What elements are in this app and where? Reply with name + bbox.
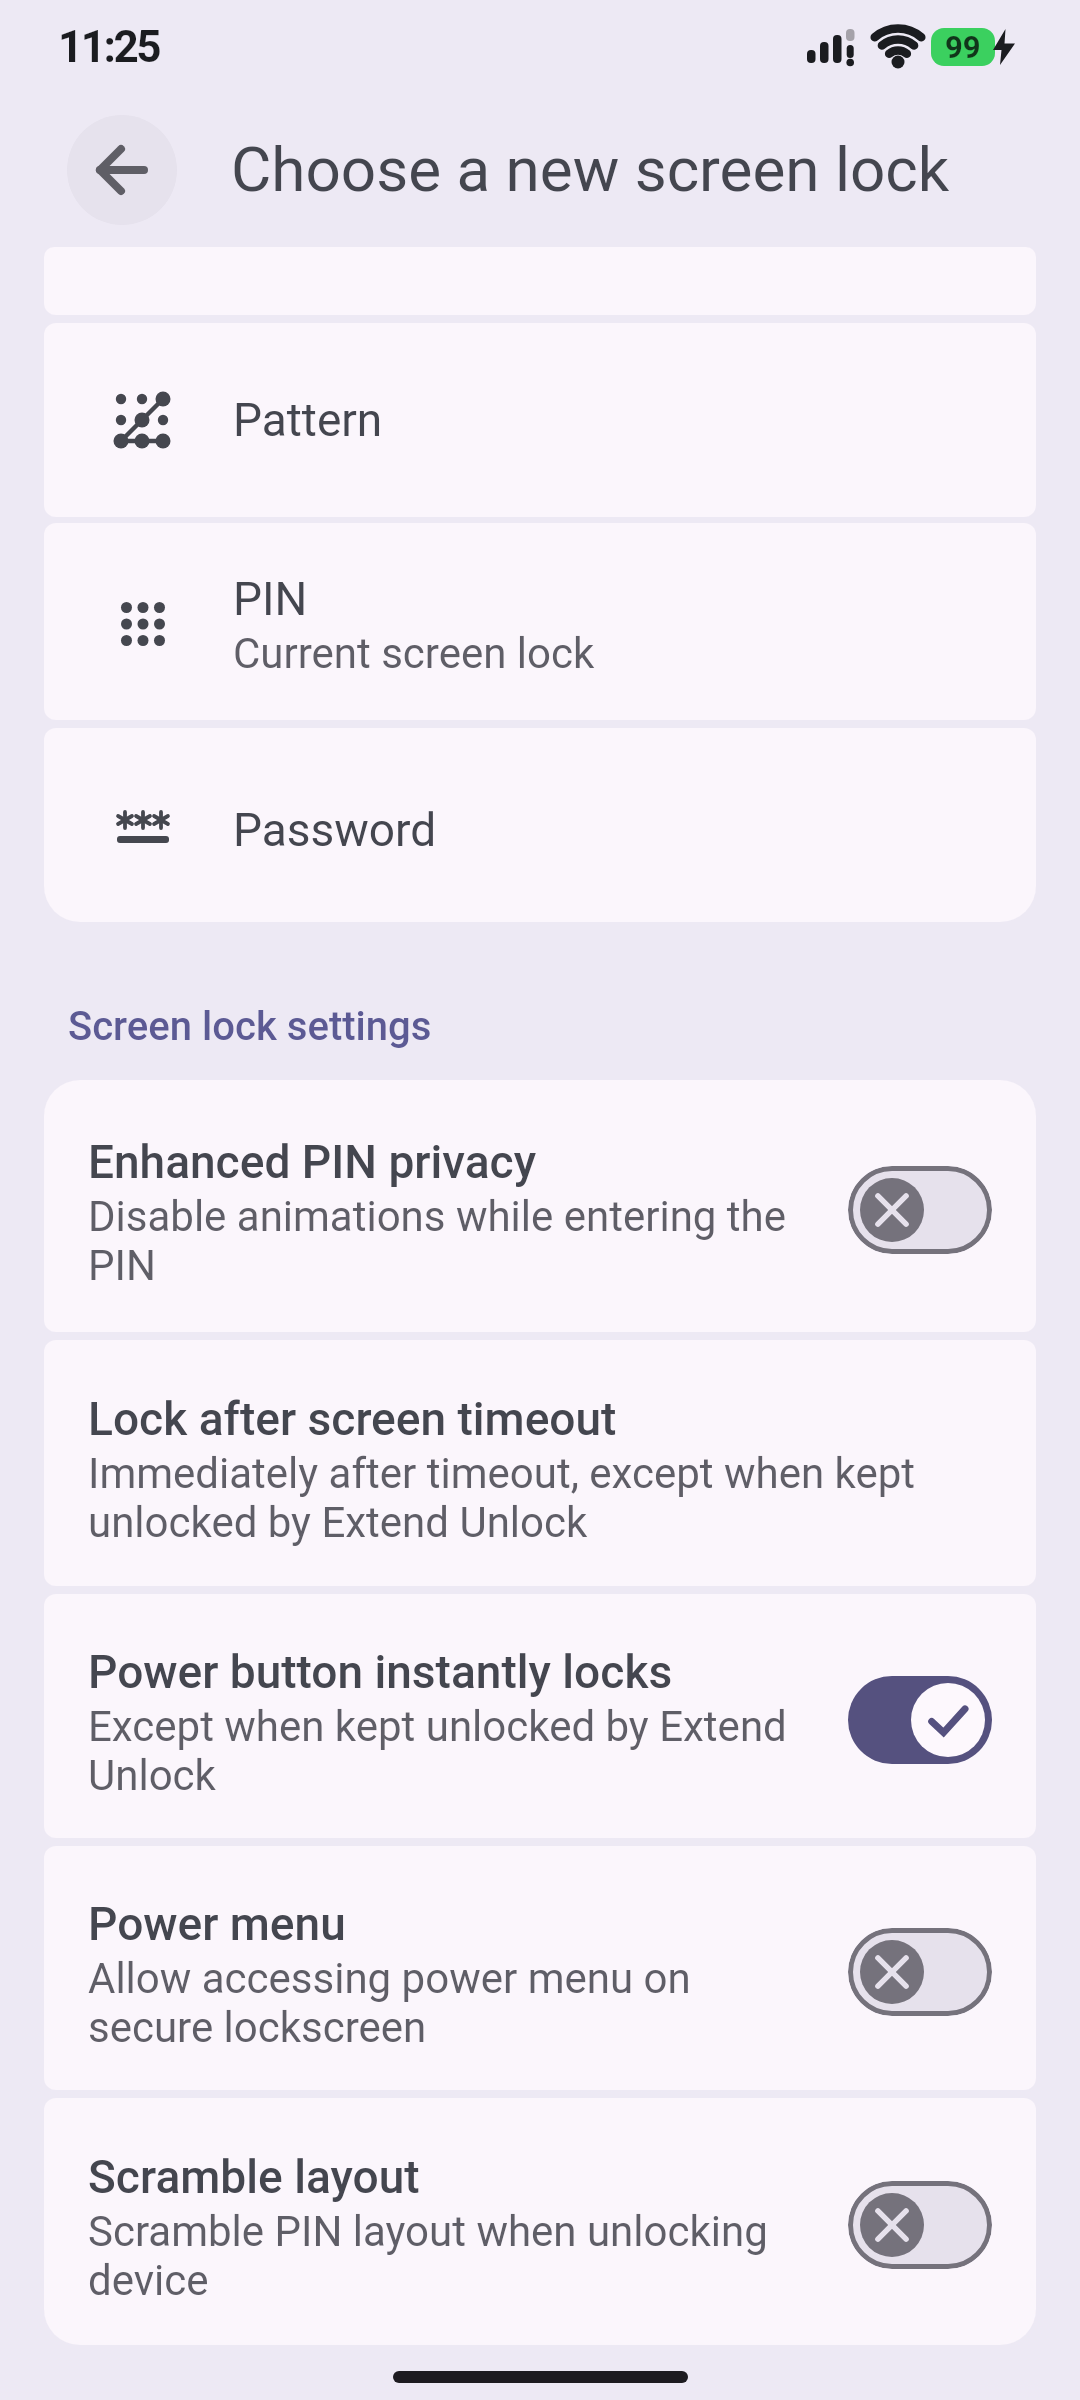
staticText: Pattern (233, 393, 383, 447)
staticText: Scramble PIN layout when unlocking devic… (88, 2207, 768, 2305)
button[interactable]: PIN (44, 523, 1036, 720)
button[interactable]: Lock after screen timeout (44, 1340, 1036, 1586)
button[interactable]: Pattern (44, 323, 1036, 517)
staticText: Power menu (88, 1897, 346, 1951)
button[interactable] (848, 2181, 992, 2269)
staticText: 11:25 (58, 21, 159, 73)
staticText: Except when kept unlocked by Extend Unlo… (88, 1702, 787, 1800)
staticText: 99 (945, 29, 981, 65)
button[interactable]: Power menu (44, 1846, 1036, 2090)
staticText: Power button instantly locks (88, 1645, 673, 1699)
staticText: PIN (233, 572, 308, 626)
button[interactable]: Enhanced PIN privacy (44, 1080, 1036, 1332)
button[interactable]: Power button instantly locks (44, 1594, 1036, 1838)
button[interactable]: Password (44, 728, 1036, 922)
staticText: Password (233, 803, 437, 857)
staticText: Allow accessing power menu on secure loc… (88, 1954, 691, 2052)
button[interactable] (848, 1166, 992, 1254)
staticText: Enhanced PIN privacy (88, 1135, 537, 1189)
staticText: Choose a new screen lock (231, 133, 950, 206)
staticText: Current screen lock (233, 629, 595, 678)
staticText: Scramble layout (88, 2150, 420, 2204)
button[interactable] (67, 115, 177, 225)
staticText: Screen lock settings (68, 1003, 432, 1050)
button[interactable] (848, 1928, 992, 2016)
button[interactable] (848, 1676, 992, 1764)
staticText: Disable animations while entering the PI… (88, 1192, 786, 1290)
button[interactable]: Scramble layout (44, 2098, 1036, 2345)
staticText: Lock after screen timeout (88, 1392, 617, 1446)
staticText: Immediately after timeout, except when k… (88, 1449, 916, 1547)
